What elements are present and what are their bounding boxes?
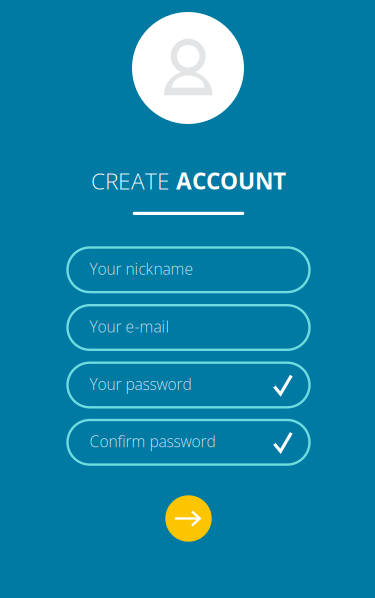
staticText: Your password xyxy=(89,373,191,395)
button[interactable]: Continue xyxy=(165,495,212,542)
button[interactable]: Your e-mail xyxy=(67,305,309,350)
staticText: Your e-mail xyxy=(89,316,169,337)
button[interactable]: Confirm password xyxy=(67,420,309,465)
button[interactable]: Your password xyxy=(67,363,309,407)
staticText: CREATE xyxy=(91,165,176,196)
staticText: Your nickname xyxy=(89,258,193,279)
staticText: Confirm password xyxy=(89,431,215,452)
staticText: ACCOUNT xyxy=(176,165,286,196)
button[interactable]: Your nickname xyxy=(67,247,309,292)
